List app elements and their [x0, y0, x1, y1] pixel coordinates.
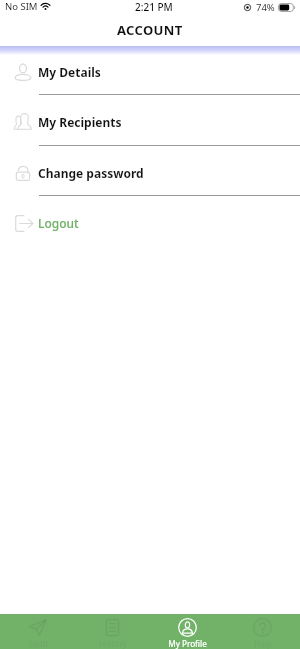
- button[interactable]: My Details: [0, 57, 300, 87]
- staticText: Logout: [38, 215, 79, 231]
- staticText: ACCOUNT: [117, 21, 183, 39]
- staticText: My Profile: [168, 638, 207, 649]
- staticText: No SIM: [5, 0, 38, 13]
- staticText: My Recipients: [38, 114, 122, 130]
- button[interactable]: My Recipients: [0, 107, 300, 137]
- staticText: 2:21 PM: [135, 0, 173, 14]
- staticText: My Details: [38, 64, 101, 80]
- button[interactable]: Change password: [0, 158, 300, 188]
- button[interactable]: Logout: [0, 208, 300, 238]
- button[interactable]: My Profile: [150, 614, 225, 649]
- staticText: Change password: [38, 165, 144, 181]
- staticText: 74%: [256, 1, 275, 14]
